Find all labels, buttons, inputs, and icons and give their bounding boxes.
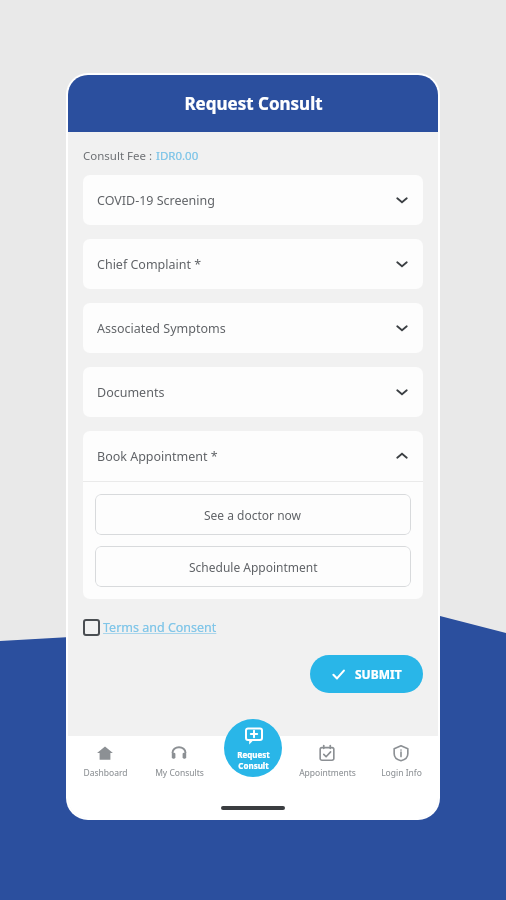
staticText: Associated Symptoms: [97, 320, 395, 337]
other: My Consults: [170, 744, 188, 762]
staticText: See a doctor now: [204, 507, 302, 523]
button[interactable]: Schedule Appointment: [95, 546, 411, 587]
other: Login Info: [392, 744, 410, 762]
button[interactable]: My Consults: [142, 744, 216, 779]
button[interactable]: Appointments: [290, 744, 364, 779]
button[interactable]: Documents: [83, 367, 423, 417]
other: Expand: [395, 257, 409, 271]
other: Expand: [395, 385, 409, 399]
staticText: My Consults: [155, 767, 204, 779]
staticText: Consult Fee :: [83, 148, 156, 164]
staticText: Request Consult: [184, 92, 323, 115]
button[interactable]: Book Appointment *: [83, 431, 423, 481]
staticText: Consult: [238, 760, 269, 771]
staticText: Terms and Consent: [103, 619, 217, 636]
staticText: Request: [237, 749, 270, 760]
button[interactable]: Request: [224, 719, 282, 777]
other: Expand: [395, 321, 409, 335]
button[interactable]: Associated Symptoms: [83, 303, 423, 353]
staticText: Dashboard: [83, 767, 128, 779]
button[interactable]: Terms and Consent: [83, 619, 217, 636]
other: Appointments: [318, 744, 336, 762]
other: Collapse: [395, 449, 409, 463]
button[interactable]: Login Info: [364, 744, 438, 779]
other: Expand: [395, 193, 409, 207]
staticText: Login Info: [381, 767, 422, 779]
staticText: COVID-19 Screening: [97, 192, 395, 209]
button[interactable]: COVID-19 Screening: [83, 175, 423, 225]
button[interactable]: SUBMIT: [310, 655, 423, 693]
staticText: Appointments: [299, 767, 356, 779]
other: Dashboard: [96, 744, 114, 762]
button[interactable]: Chief Complaint *: [83, 239, 423, 289]
staticText: Book Appointment *: [97, 448, 395, 465]
staticText: SUBMIT: [355, 666, 402, 682]
button[interactable]: Dashboard: [68, 744, 142, 779]
button[interactable]: See a doctor now: [95, 494, 411, 535]
staticText: IDR0.00: [156, 148, 199, 164]
staticText: Chief Complaint *: [97, 256, 395, 273]
staticText: Schedule Appointment: [189, 559, 318, 575]
staticText: Documents: [97, 384, 395, 401]
